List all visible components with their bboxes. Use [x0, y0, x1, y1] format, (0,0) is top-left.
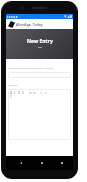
- staticText: U: [18, 91, 21, 95]
- button[interactable]: Align left: [28, 90, 32, 95]
- staticText: I: [14, 91, 16, 95]
- staticText: New Entry: [27, 38, 53, 45]
- button[interactable]: Recents: [52, 156, 72, 170]
- button[interactable]: Align center: [32, 90, 36, 95]
- button[interactable]: C: [9, 95, 13, 99]
- button[interactable]: Redo: [43, 90, 47, 95]
- staticText: C: [10, 95, 12, 99]
- staticText: Title (cannot be changed once created): [8, 66, 54, 69]
- button[interactable]: B: [9, 90, 13, 95]
- staticText: S: [22, 91, 24, 95]
- staticText: Content: [8, 83, 18, 86]
- button[interactable]: I: [13, 90, 17, 95]
- button[interactable]: Back: [11, 156, 31, 170]
- staticText: AfterAge. Today: [16, 22, 43, 27]
- button[interactable]: U: [17, 90, 21, 95]
- button[interactable]: S: [21, 90, 25, 95]
- button[interactable]: Home: [32, 156, 52, 170]
- staticText: B: [10, 91, 12, 95]
- button[interactable]: Undo: [39, 90, 43, 95]
